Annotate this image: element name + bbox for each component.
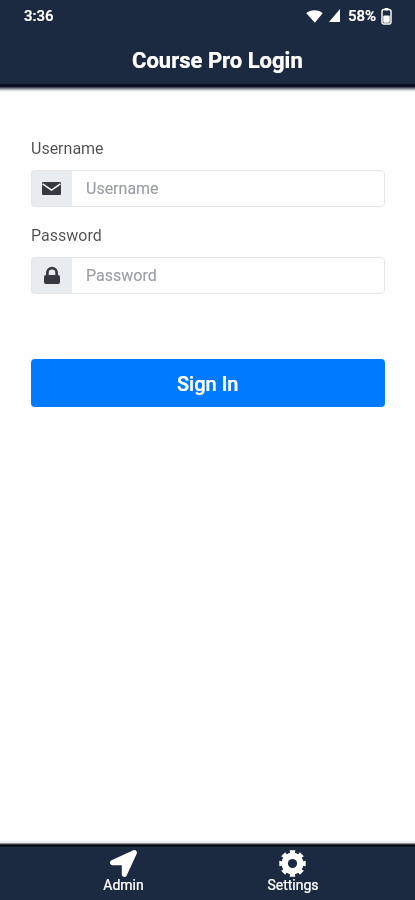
staticText: Password	[86, 266, 157, 285]
staticText: Sign In	[177, 372, 239, 395]
button[interactable]: Settings	[208, 847, 377, 900]
staticText: Course Pro Login	[132, 48, 303, 74]
staticText: Settings	[267, 877, 319, 893]
staticText: Admin	[103, 877, 144, 893]
button[interactable]: Sign In	[31, 359, 385, 407]
button[interactable]: Admin	[39, 847, 208, 900]
button[interactable]: Username input	[31, 170, 385, 207]
staticText: 58%	[348, 7, 377, 25]
staticText: Username	[86, 179, 159, 198]
button[interactable]: Password input	[31, 257, 385, 294]
staticText: Username	[31, 139, 104, 158]
staticText: Password	[31, 226, 102, 245]
staticText: 3:36	[24, 7, 54, 25]
